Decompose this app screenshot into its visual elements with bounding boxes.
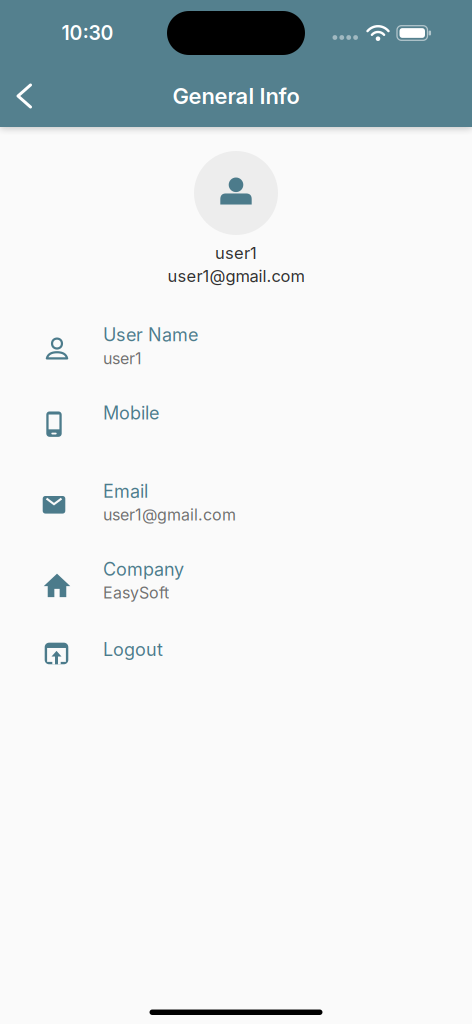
staticText: user1 bbox=[103, 349, 142, 368]
staticText: Email bbox=[103, 480, 148, 502]
staticText: user1 bbox=[215, 243, 257, 263]
staticText: General Info bbox=[172, 83, 299, 109]
staticText: Mobile bbox=[103, 402, 159, 424]
staticText: User Name bbox=[103, 324, 198, 346]
staticText: user1@gmail.com bbox=[103, 505, 236, 524]
staticText: user1@gmail.com bbox=[167, 266, 304, 286]
button[interactable]: Logout bbox=[0, 636, 472, 662]
staticText: Company bbox=[103, 558, 184, 580]
staticText: 10:30 bbox=[61, 21, 113, 45]
staticText: Logout bbox=[103, 639, 163, 660]
button[interactable]: Back bbox=[0, 74, 44, 118]
staticText: EasySoft bbox=[103, 583, 169, 602]
